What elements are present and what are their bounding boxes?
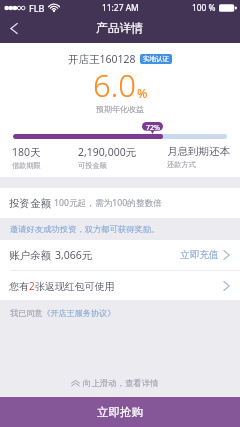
staticText: 月息到期还本 xyxy=(167,145,230,158)
button[interactable]: 我已同意《开店王服务协议》 xyxy=(0,305,240,321)
staticText: 可投金额 xyxy=(78,161,107,170)
staticText: 2,190,000元 xyxy=(78,145,137,159)
staticText: 3,066元 xyxy=(55,248,93,262)
button[interactable]: Back xyxy=(0,18,28,38)
staticText: 预期年化收益 xyxy=(96,104,144,114)
staticText: 账户余额 xyxy=(9,249,51,262)
staticText: 借款期限 xyxy=(12,161,41,170)
staticText: 11:27 AM xyxy=(102,2,139,13)
staticText: 投资金额 xyxy=(9,197,51,210)
button[interactable]: 立即抢购 xyxy=(0,397,240,427)
staticText: 6.0 xyxy=(93,64,136,106)
staticText: 100 % xyxy=(192,2,216,13)
button[interactable]: 您有2张返现红包可使用 xyxy=(0,271,240,300)
button[interactable]: 账户余额 xyxy=(0,240,240,270)
staticText: 开店王160128 xyxy=(68,52,136,66)
staticText: 向上滑动，查看详情 xyxy=(83,378,159,389)
button[interactable]: 向上滑动，查看详情 xyxy=(0,372,240,394)
staticText: 180天 xyxy=(12,145,41,159)
staticText: 72% xyxy=(146,123,160,133)
staticText: % xyxy=(137,85,148,102)
staticText: 立即充值 xyxy=(180,249,219,261)
staticText: 实地认证 xyxy=(143,55,169,63)
button[interactable]: 邀请好友成功投资，双方都可获得奖励。 xyxy=(0,218,240,240)
staticText: 还款方式 xyxy=(167,160,196,169)
staticText: 100元起，需为100的整数倍 xyxy=(54,197,163,209)
staticText: FLB xyxy=(29,2,45,14)
button[interactable]: 投资金额 xyxy=(0,188,240,218)
staticText: 我已同意《开店王服务协议》 xyxy=(10,308,116,318)
staticText: 立即抢购 xyxy=(97,405,143,419)
staticText: 邀请好友成功投资，双方都可获得奖励。 xyxy=(10,224,160,234)
staticText: 产品详情 xyxy=(96,21,144,36)
staticText: 您有2张返现红包可使用 xyxy=(9,279,115,293)
